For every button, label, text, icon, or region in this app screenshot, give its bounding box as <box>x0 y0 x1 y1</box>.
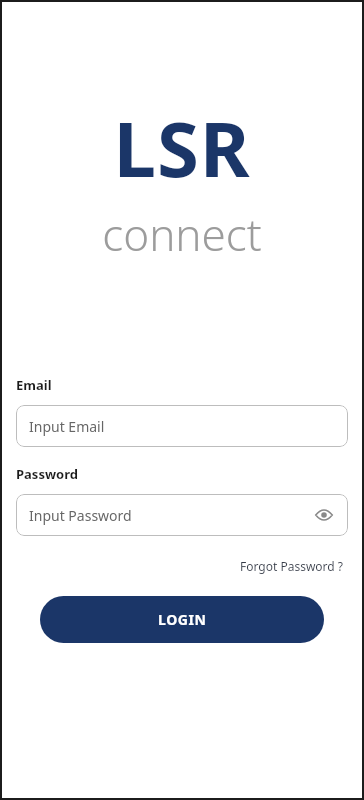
staticText: Forgot Password ? <box>240 558 344 574</box>
staticText: LOGIN <box>158 610 207 629</box>
button[interactable]: Forgot Password ? <box>236 556 348 576</box>
button[interactable]: Input Password <box>16 494 348 536</box>
staticText: Password <box>16 465 78 483</box>
staticText: Email <box>16 376 52 394</box>
staticText: connect <box>102 204 262 264</box>
staticText: Input Email <box>29 417 105 436</box>
staticText: LSR <box>113 96 251 200</box>
staticText: Input Password <box>29 506 132 525</box>
button[interactable]: Input Email <box>16 405 348 447</box>
button[interactable]: LOGIN <box>40 596 324 643</box>
button[interactable]: Show password <box>313 504 335 526</box>
